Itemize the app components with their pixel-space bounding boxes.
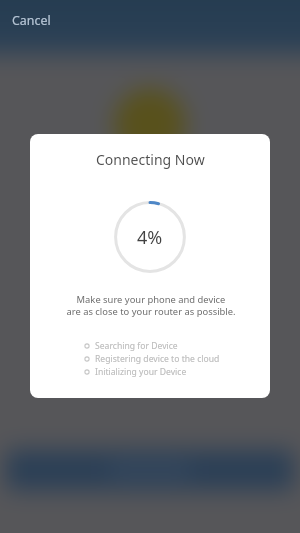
staticText: Cancel xyxy=(12,12,51,29)
staticText: Searching for Device xyxy=(95,340,178,352)
staticText: 4% xyxy=(137,225,163,250)
staticText: Make sure your phone and device are as c… xyxy=(66,293,236,318)
button[interactable]: Cancel xyxy=(5,7,58,34)
staticText: Registering device to the cloud xyxy=(95,353,220,365)
staticText: Connecting Now xyxy=(96,150,205,169)
staticText: Initializing your Device xyxy=(95,366,187,378)
other: Connection progress 4 percent xyxy=(115,202,185,272)
